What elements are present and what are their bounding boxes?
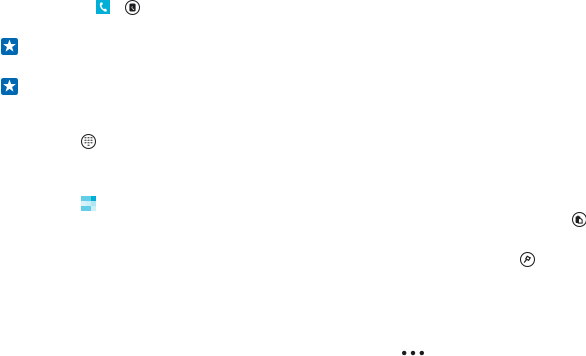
button[interactable]: Favorite xyxy=(1,38,18,55)
button[interactable]: Compose xyxy=(520,252,534,266)
button[interactable]: Call xyxy=(96,0,110,14)
button[interactable]: Favorite xyxy=(1,78,18,95)
button[interactable]: Contact card xyxy=(125,0,139,14)
button[interactable]: More xyxy=(401,349,425,356)
button[interactable]: Paste xyxy=(572,212,586,226)
button[interactable]: Keypad xyxy=(81,134,95,148)
